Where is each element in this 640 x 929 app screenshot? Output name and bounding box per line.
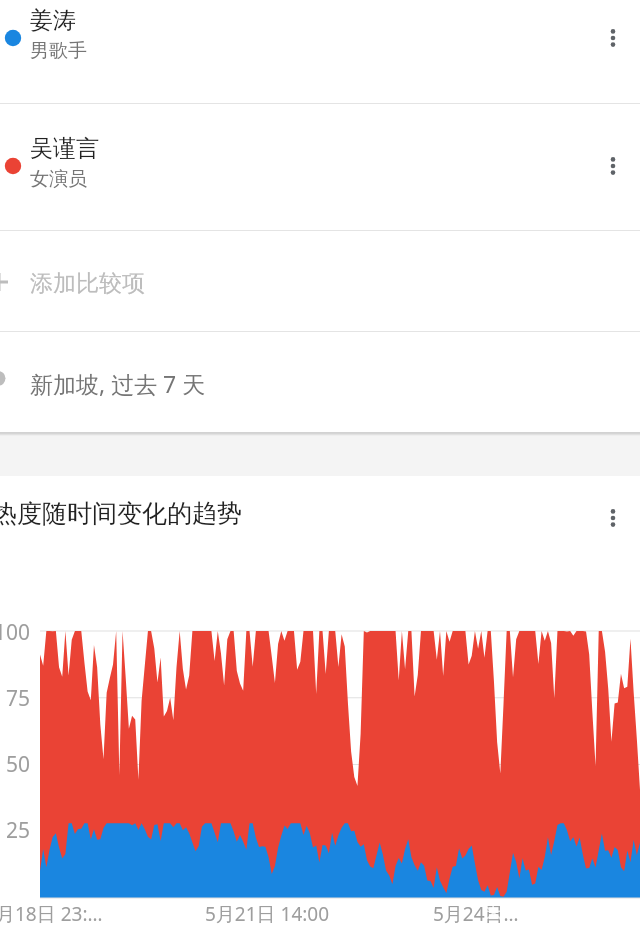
staticText: 100 [0,618,31,647]
staticText: 25 [6,816,31,845]
staticText: 男歌手 [30,39,87,63]
staticText: 吴谨言 [30,134,99,163]
staticText: 添加比较项 [30,269,145,298]
staticText: 月18日 23:… [0,901,103,927]
staticText: 75 [6,684,31,713]
button[interactable]: More options for 姜涛 [589,14,637,62]
staticText: 女演员 [30,167,87,191]
button[interactable]: More options for 吴谨言 [589,142,637,190]
staticText: 50 [6,750,31,779]
staticText: 热度随时间变化的趋势 [0,498,242,529]
staticText: 5月21日 14:00 [205,901,330,927]
staticText: 头条 @华娱新鲜事 [483,897,639,923]
button[interactable]: 添加比较项 [0,231,640,332]
staticText: 姜涛 [30,6,76,35]
button[interactable]: 姜涛 [0,0,640,103]
button[interactable]: 吴谨言 [0,104,640,230]
staticText: 新加坡, 过去 7 天 [30,368,206,399]
button[interactable]: 新加坡, 过去 7 天 [0,332,640,433]
button[interactable]: Chart options [589,494,637,542]
staticText: 5月24日… [433,901,519,927]
